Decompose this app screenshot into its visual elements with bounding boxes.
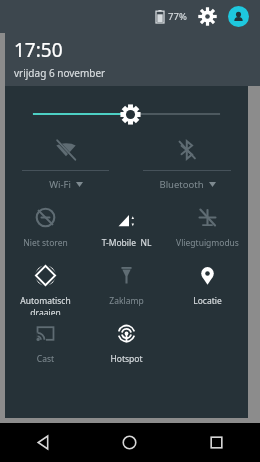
staticText: Zaklamp: [88, 295, 165, 307]
button[interactable]: Niet storen: [5, 199, 86, 257]
staticText: Vliegtuigmodus: [169, 237, 246, 249]
button[interactable]: Brightness: [5, 103, 248, 125]
staticText: 17:50: [14, 37, 63, 63]
button[interactable]: Recents: [173, 423, 260, 462]
staticText: Wi-Fi: [49, 178, 71, 191]
button[interactable]: User: [228, 6, 249, 27]
button[interactable]: Zaklamp: [86, 257, 167, 315]
staticText: Automatisch draaien: [7, 295, 84, 315]
staticText: Cast: [7, 353, 84, 365]
button[interactable]: Locatie: [167, 257, 248, 315]
button[interactable]: Hotspot: [86, 315, 167, 373]
button[interactable]: Cast: [5, 315, 86, 373]
button[interactable]: Home: [86, 423, 173, 462]
button[interactable]: Automatisch draaien: [5, 257, 86, 315]
button[interactable]: Wi-Fi: [5, 139, 126, 195]
staticText: T-Mobile NL: [88, 237, 165, 249]
button[interactable]: Bluetooth: [126, 139, 248, 195]
button[interactable]: 17:50: [14, 37, 260, 86]
staticText: 77%: [168, 10, 187, 23]
button[interactable]: Back: [0, 423, 86, 462]
staticText: Bluetooth: [159, 178, 204, 191]
button[interactable]: Settings: [198, 7, 217, 26]
button[interactable]: Vliegtuigmodus: [167, 199, 248, 257]
staticText: Locatie: [169, 295, 246, 307]
staticText: Niet storen: [7, 237, 84, 249]
staticText: vrijdag 6 november: [14, 66, 106, 80]
staticText: Hotspot: [88, 353, 165, 365]
button[interactable]: T-Mobile NL: [86, 199, 167, 257]
